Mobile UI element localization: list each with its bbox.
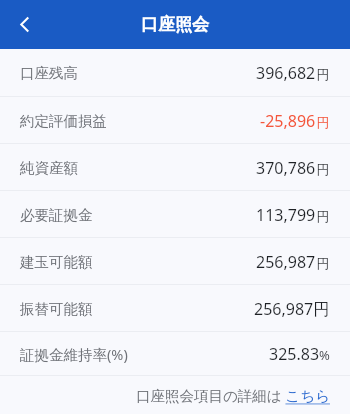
staticText: 建玉可能額 (20, 253, 93, 271)
staticText: 口座照会 (141, 14, 209, 35)
button[interactable]: 約定評価損益 (0, 97, 350, 144)
staticText: -25,896 円 (260, 110, 330, 132)
staticText: 口座照会項目の詳細は こちら (136, 385, 330, 405)
staticText: 256,987 円 (256, 251, 330, 273)
staticText: 証拠金維持率(%) (20, 344, 128, 364)
button[interactable]: 口座残高 (0, 49, 350, 97)
staticText: 370,786 円 (256, 157, 330, 179)
staticText: 113,799 円 (256, 204, 330, 226)
button[interactable]: Back (0, 0, 49, 49)
staticText: 256,987円 (254, 298, 330, 320)
button[interactable]: 証拠金維持率(%) (0, 332, 350, 376)
button[interactable]: 建玉可能額 (0, 238, 350, 285)
staticText: 325.83% (269, 343, 330, 365)
staticText: 振替可能額 (20, 300, 93, 318)
staticText: 必要証拠金 (20, 206, 93, 224)
staticText: 約定評価損益 (20, 112, 107, 130)
button[interactable]: 口座照会項目の詳細は こちら (136, 385, 330, 405)
staticText: 396,682 円 (256, 62, 330, 84)
staticText: 口座残高 (20, 64, 78, 82)
button[interactable]: 振替可能額 (0, 285, 350, 332)
staticText: 純資産額 (20, 159, 78, 177)
button[interactable]: 純資産額 (0, 144, 350, 191)
button[interactable]: 必要証拠金 (0, 191, 350, 238)
